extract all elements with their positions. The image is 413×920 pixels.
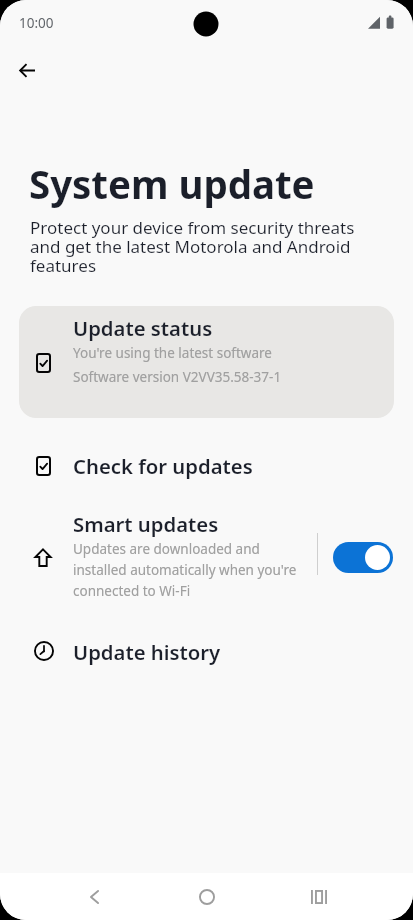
staticText: Updates are downloaded and installed aut… (73, 540, 298, 600)
button[interactable]: Home (183, 873, 231, 920)
staticText: Software version V2VV35.58-37-1 (73, 368, 282, 386)
button[interactable]: Recent apps (295, 873, 343, 920)
staticText: Update status (73, 314, 213, 342)
button[interactable]: Smart updates (0, 500, 413, 612)
button[interactable]: Check for updates (0, 434, 413, 496)
button[interactable]: Back (7, 50, 47, 90)
staticText: 10:00 (19, 14, 54, 32)
button[interactable]: Back (70, 873, 118, 920)
staticText: System update (29, 158, 315, 210)
staticText: Smart updates (73, 510, 219, 538)
staticText: Check for updates (73, 452, 253, 480)
button[interactable]: Smart updates on (333, 542, 393, 573)
button[interactable]: Update status (19, 306, 394, 418)
staticText: You're using the latest software (73, 344, 272, 362)
staticText: Update history (73, 638, 221, 666)
button[interactable]: Update history (0, 622, 413, 682)
staticText: Protect your device from security threat… (30, 216, 360, 277)
